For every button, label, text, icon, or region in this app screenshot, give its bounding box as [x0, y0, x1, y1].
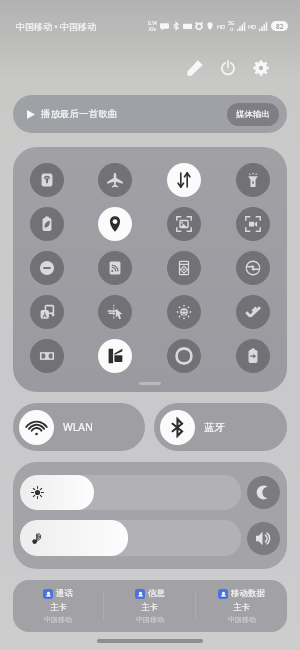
button[interactable]: Screenshot: [149, 202, 218, 246]
button[interactable]: Edit: [186, 59, 203, 76]
button[interactable]: Volume mode: [247, 522, 280, 555]
staticText: 中国移动: [44, 615, 72, 624]
button[interactable]: 播放最后一首歌曲: [13, 95, 287, 133]
button[interactable]: Translate: [13, 290, 81, 334]
staticText: 主卡: [141, 602, 158, 613]
staticText: LT: [230, 27, 234, 32]
staticText: 移动数据: [231, 588, 265, 599]
button[interactable]: Battery saver: [13, 202, 81, 246]
staticText: 0.14: [148, 20, 157, 26]
button[interactable]: Dark mode: [13, 334, 81, 378]
staticText: 媒体输出: [236, 109, 270, 120]
button[interactable]: Airplane mode: [81, 158, 149, 202]
staticText: 中国移动: [228, 615, 256, 624]
staticText: 中国移动: [136, 615, 164, 624]
staticText: HD: [248, 23, 257, 30]
button[interactable]: NFC: [81, 334, 149, 378]
button[interactable]: Brightness mode: [247, 476, 280, 509]
button[interactable]: 信息: [104, 580, 195, 632]
button[interactable]: Settings: [252, 59, 269, 76]
button[interactable]: 移动数据: [196, 580, 287, 632]
button[interactable]: Auto brightness: [149, 290, 218, 334]
staticText: 信息: [148, 588, 165, 599]
button[interactable]: Ring: [149, 334, 218, 378]
staticText: 通话: [56, 588, 73, 599]
button[interactable]: Flashlight: [218, 158, 287, 202]
staticText: 蓝牙: [204, 421, 225, 434]
staticText: WLAN: [63, 420, 93, 434]
button[interactable]: Volume: [20, 520, 241, 556]
button[interactable]: 蓝牙: [154, 403, 287, 451]
button[interactable]: Location: [81, 202, 149, 246]
button[interactable]: Hotspot: [81, 246, 149, 290]
button[interactable]: Power: [219, 59, 236, 76]
button[interactable]: Sync: [218, 246, 287, 290]
button[interactable]: WLAN: [13, 403, 145, 451]
staticText: HD: [217, 23, 226, 30]
button[interactable]: Brightness: [20, 475, 241, 510]
button[interactable]: Power share: [218, 334, 287, 378]
staticText: 主卡: [233, 602, 250, 613]
staticText: 5G: [228, 20, 235, 27]
button[interactable]: Screen record: [218, 202, 287, 246]
button[interactable]: Lock: [13, 158, 81, 202]
button[interactable]: Select: [218, 290, 287, 334]
button[interactable]: 通话: [13, 580, 103, 632]
staticText: 主卡: [50, 602, 67, 613]
staticText: K/s: [149, 26, 156, 32]
button[interactable]: Reader mode: [149, 246, 218, 290]
button[interactable]: Cast: [81, 290, 149, 334]
button[interactable]: Mobile data: [149, 158, 218, 202]
staticText: 82: [276, 22, 284, 31]
staticText: 中国移动 • 中国移动: [16, 20, 97, 32]
button[interactable]: Do not disturb: [13, 246, 81, 290]
button[interactable]: 媒体输出: [227, 103, 279, 126]
staticText: 播放最后一首歌曲: [41, 108, 117, 120]
